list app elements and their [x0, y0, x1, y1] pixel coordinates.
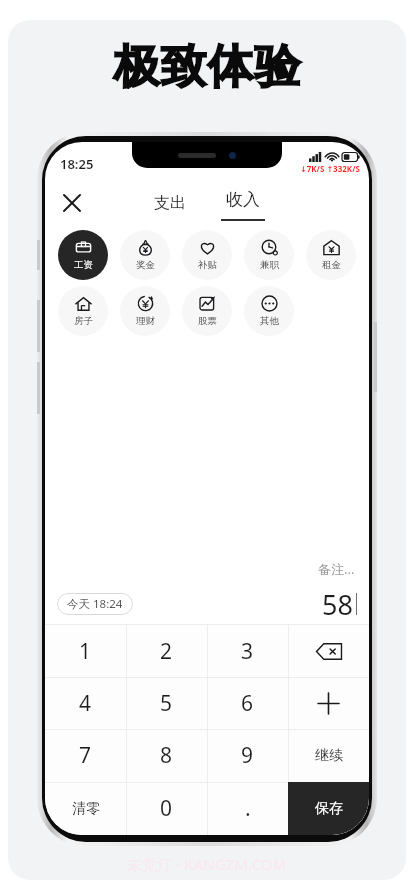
staticText: 58	[322, 586, 353, 623]
button[interactable]: 租金	[306, 230, 356, 280]
button[interactable]: 清零	[45, 782, 126, 835]
staticText: 2	[160, 637, 173, 666]
button[interactable]: 继续	[288, 729, 369, 782]
button[interactable]: 支出	[140, 189, 200, 217]
staticText: 股票	[198, 315, 217, 327]
staticText: 未觉汀 · KANGZM.COM	[127, 854, 287, 874]
staticText: 极致体验	[113, 38, 301, 96]
staticText: 今天 18:24	[67, 596, 123, 612]
button[interactable]: 备注...	[45, 554, 369, 584]
staticText: 1	[79, 637, 92, 666]
staticText: ↓7K/S ↑332K/S	[300, 163, 360, 174]
staticText: 工资	[74, 259, 93, 271]
button[interactable]: 1	[45, 625, 126, 677]
staticText: 兼职	[260, 259, 279, 271]
button[interactable]: Backspace	[288, 625, 369, 677]
button[interactable]: 6	[207, 677, 288, 729]
staticText: 租金	[322, 259, 341, 271]
staticText: 房子	[74, 315, 93, 327]
button[interactable]: 4	[45, 677, 126, 729]
staticText: 其他	[260, 315, 279, 327]
button[interactable]: 8	[126, 729, 207, 782]
staticText: 奖金	[136, 259, 155, 271]
button[interactable]: 工资	[58, 230, 108, 280]
button[interactable]: 房子	[58, 286, 108, 336]
button[interactable]: 理财	[120, 286, 170, 336]
staticText: 6	[241, 689, 254, 718]
button[interactable]: Close	[53, 184, 91, 222]
staticText: 继续	[315, 747, 343, 765]
staticText: 备注...	[318, 560, 355, 578]
staticText: 7	[79, 741, 92, 770]
button[interactable]: Plus	[288, 677, 369, 729]
staticText: 保存	[315, 800, 343, 818]
button[interactable]: 股票	[182, 286, 232, 336]
button[interactable]: 保存	[288, 782, 369, 835]
staticText: .	[245, 794, 251, 823]
staticText: 4	[79, 689, 92, 718]
button[interactable]: 今天 18:24	[57, 593, 133, 615]
staticText: 理财	[136, 315, 155, 327]
staticText: 18:25	[60, 155, 94, 173]
button[interactable]: 7	[45, 729, 126, 782]
button[interactable]: .	[207, 782, 288, 835]
button[interactable]: 兼职	[244, 230, 294, 280]
button[interactable]: 收入	[212, 185, 274, 221]
button[interactable]: 0	[126, 782, 207, 835]
staticText: 补贴	[198, 259, 217, 271]
staticText: 0	[160, 794, 173, 823]
button[interactable]: 9	[207, 729, 288, 782]
button[interactable]: 2	[126, 625, 207, 677]
staticText: 3	[241, 637, 254, 666]
button[interactable]: 其他	[244, 286, 294, 336]
staticText: 清零	[72, 800, 100, 818]
button[interactable]: 补贴	[182, 230, 232, 280]
button[interactable]: 5	[126, 677, 207, 729]
staticText: 支出	[154, 193, 186, 213]
staticText: 9	[241, 741, 254, 770]
staticText: 收入	[226, 189, 260, 210]
button[interactable]: 奖金	[120, 230, 170, 280]
staticText: 8	[160, 741, 173, 770]
staticText: 5	[160, 689, 173, 718]
button[interactable]: 3	[207, 625, 288, 677]
